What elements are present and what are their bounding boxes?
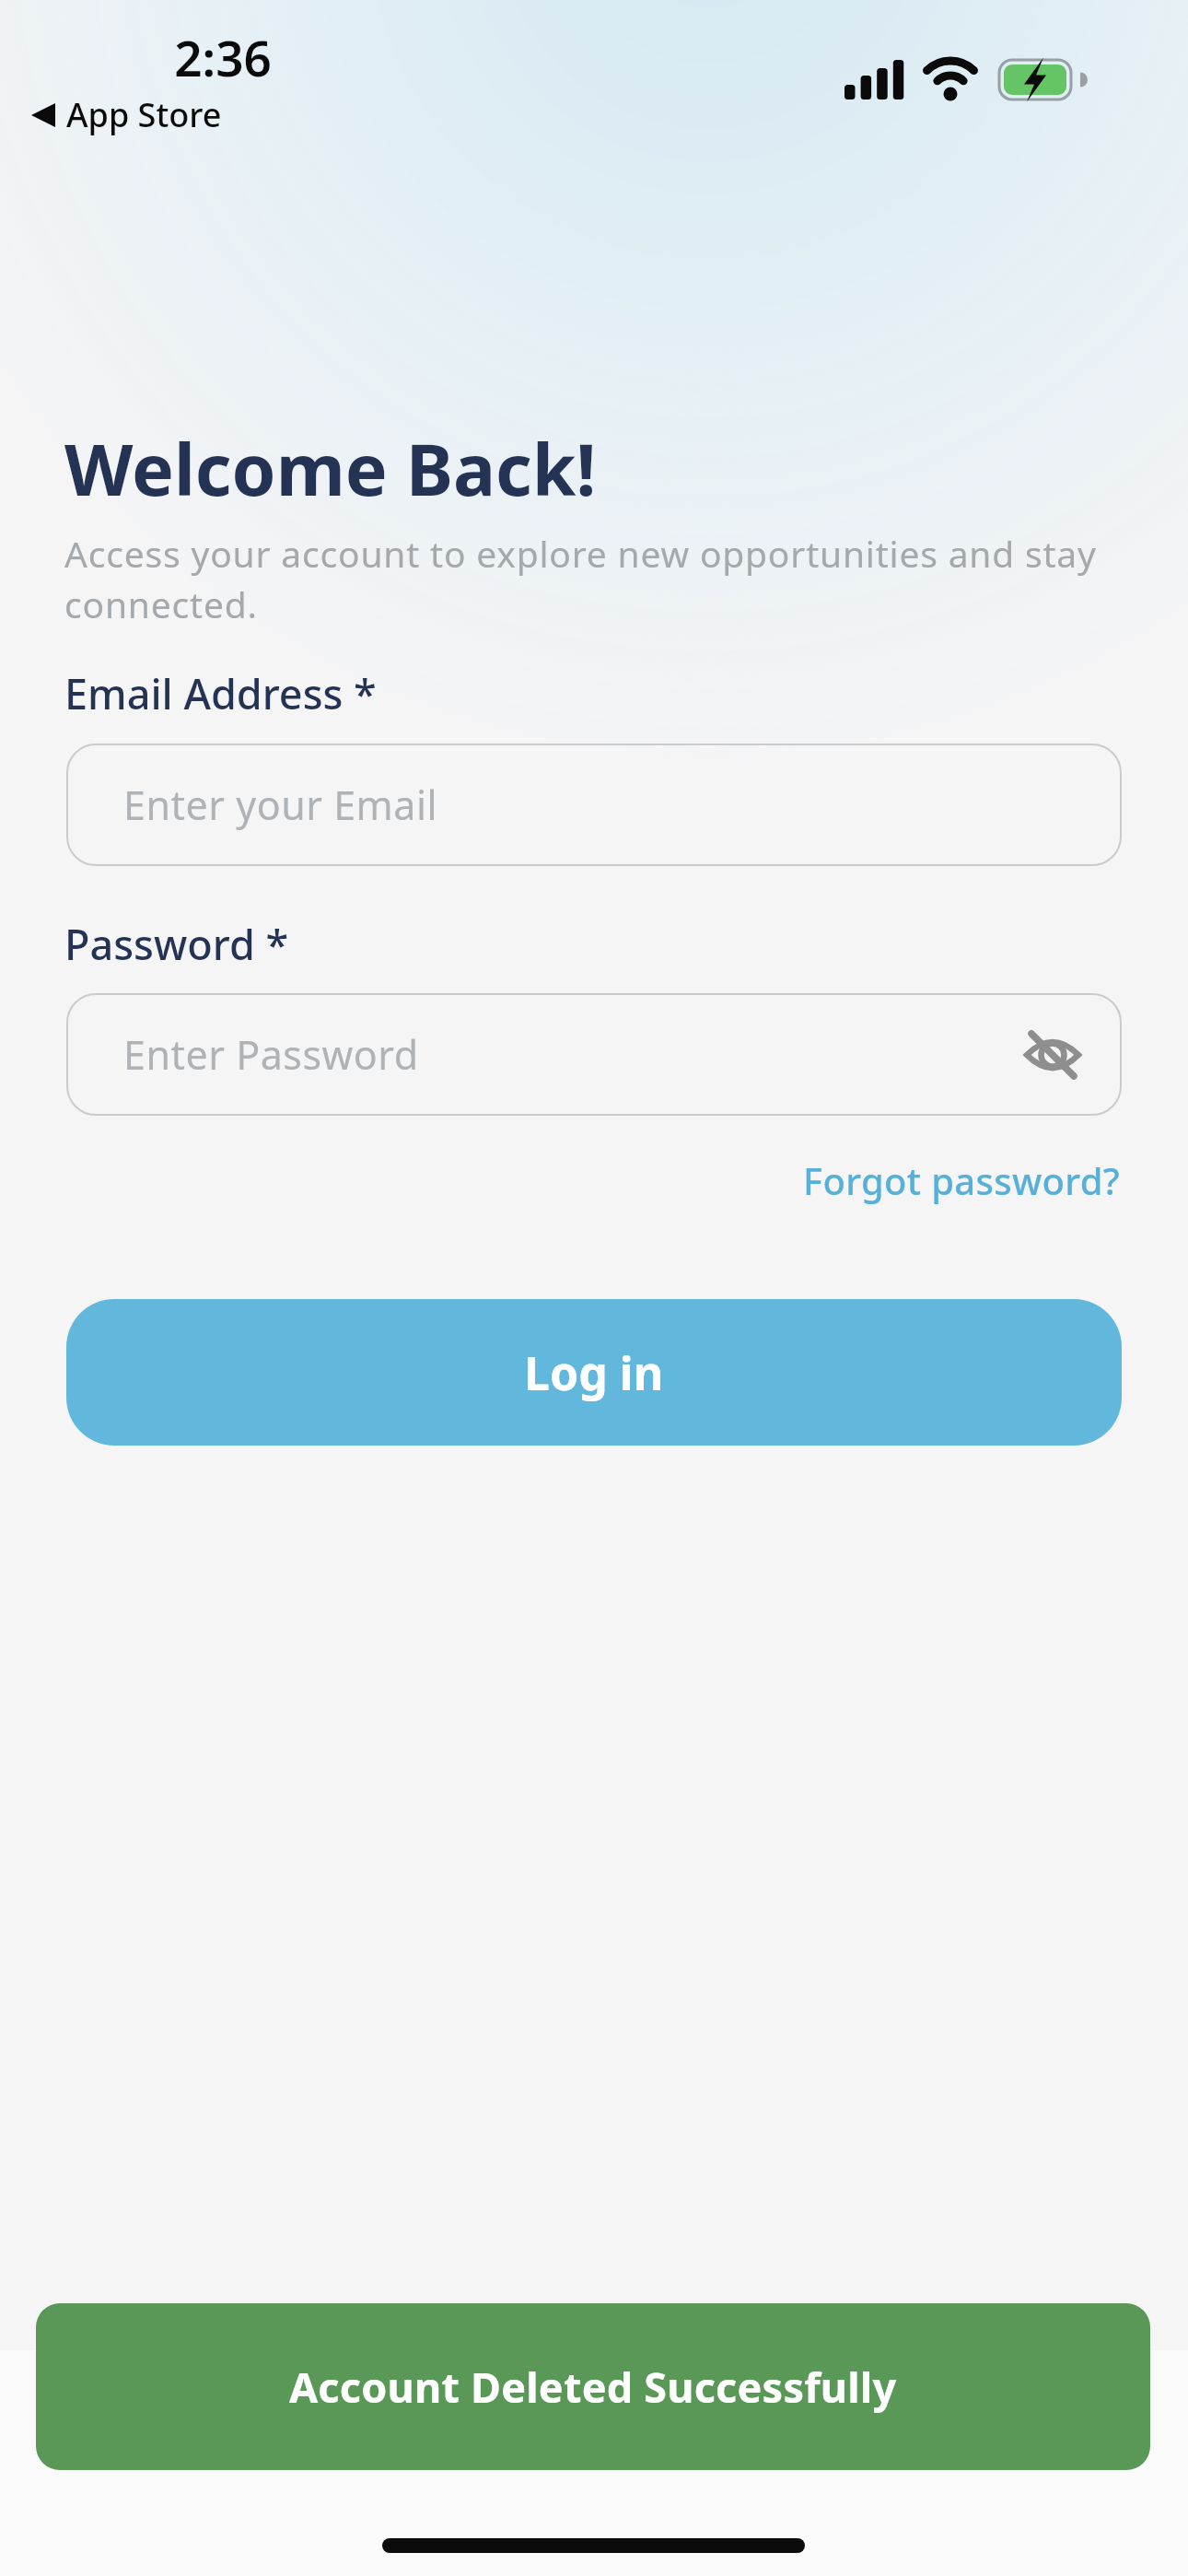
button[interactable]: Enter your Email: [66, 744, 1122, 866]
staticText: Email Address *: [64, 665, 377, 721]
staticText: Log in: [524, 1341, 664, 1404]
button[interactable]: [1024, 1026, 1081, 1083]
staticText: Enter Password: [123, 1027, 419, 1082]
staticText: Welcome Back!: [64, 420, 597, 517]
staticText: App Store: [66, 92, 222, 137]
staticText: Forgot password?: [803, 1155, 1120, 1205]
button[interactable]: Forgot password?: [0, 1155, 1120, 1205]
button[interactable]: App Store: [31, 92, 222, 137]
staticText: 2:36: [0, 24, 446, 90]
button[interactable]: Account Deleted Successfully: [36, 2303, 1150, 2470]
staticText: Password *: [64, 916, 289, 972]
staticText: Enter your Email: [123, 778, 438, 832]
button[interactable]: Log in: [66, 1299, 1122, 1446]
staticText: Access your account to explore new oppor…: [64, 529, 1097, 629]
staticText: Account Deleted Successfully: [289, 2359, 897, 2415]
button[interactable]: Enter Password: [66, 993, 1122, 1116]
